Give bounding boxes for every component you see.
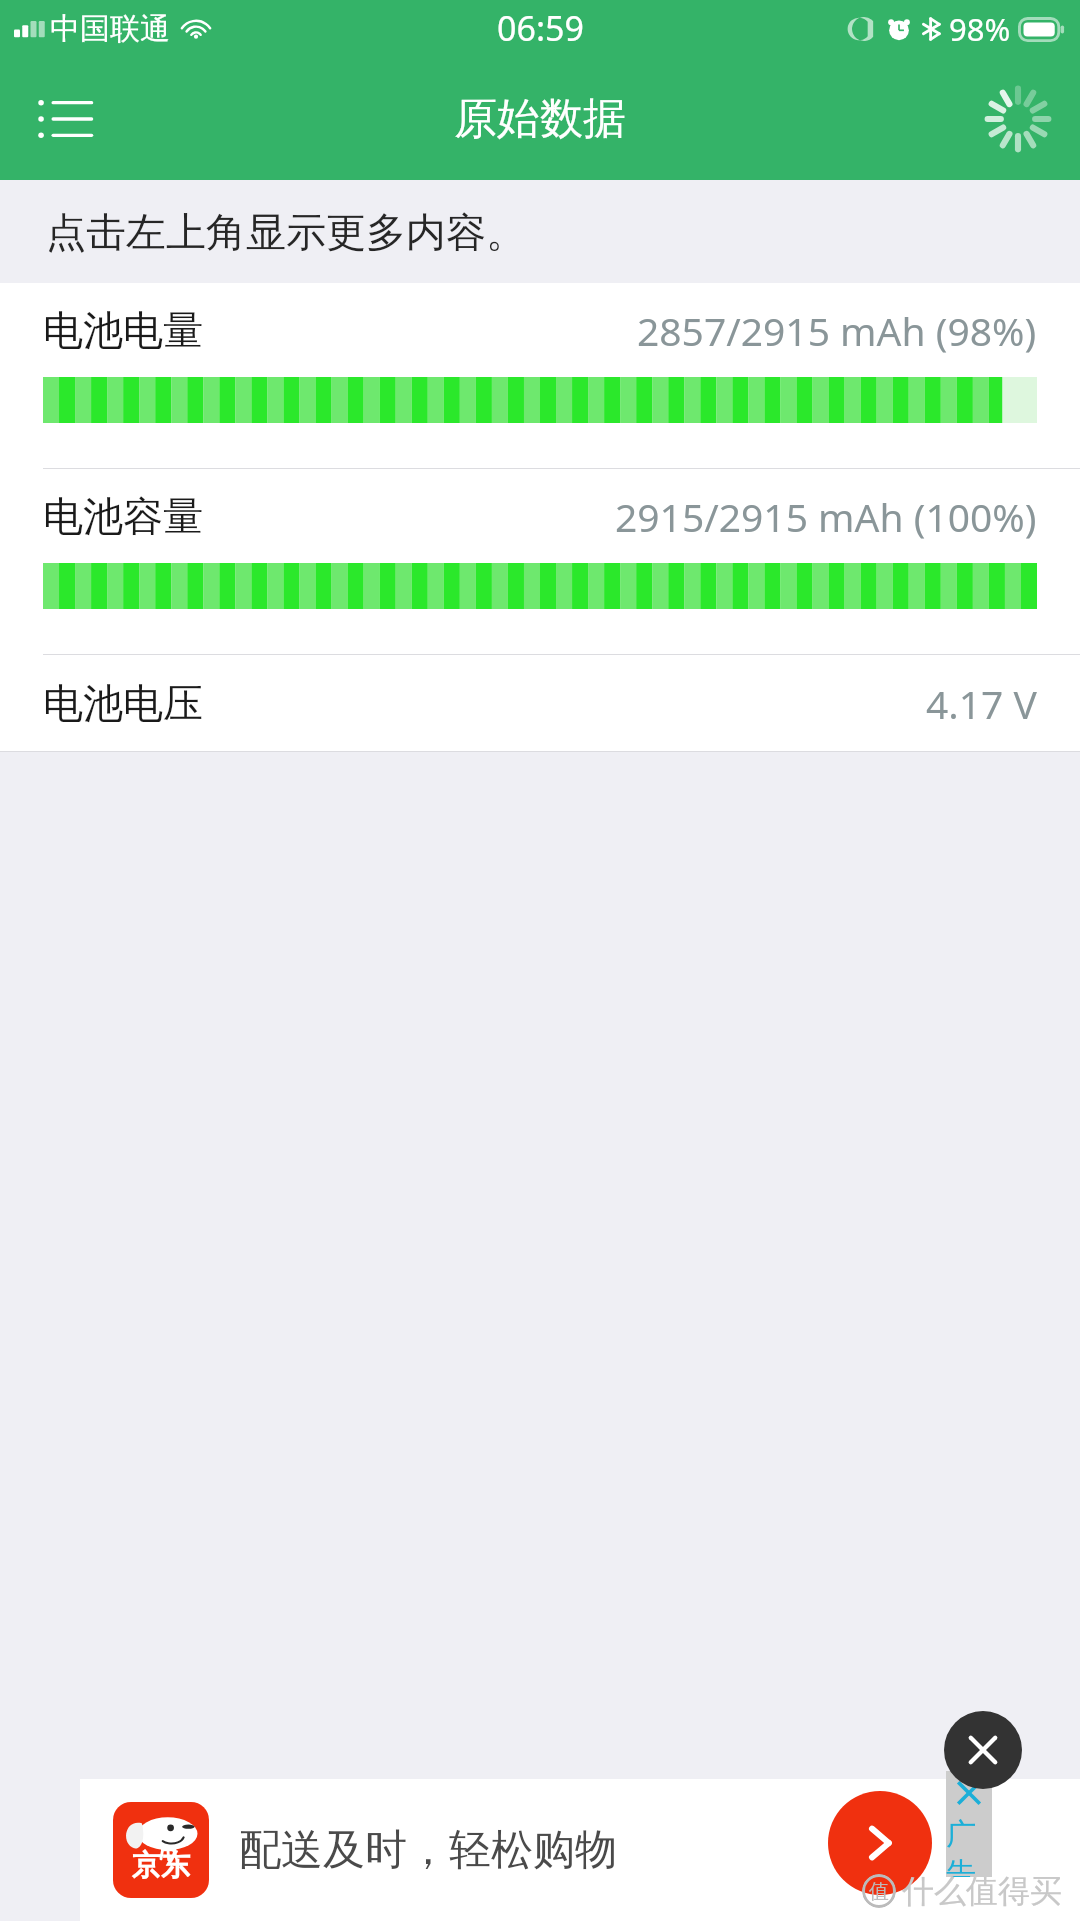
button[interactable]: Close — [944, 1711, 1022, 1789]
staticText: 电池电量 — [43, 305, 203, 355]
staticText: 原始数据 — [454, 92, 626, 146]
staticText: 电池容量 — [43, 491, 203, 541]
button[interactable]: Menu — [18, 71, 114, 167]
staticText: 什么值得买 — [902, 1871, 1062, 1911]
staticText: 值 — [869, 1879, 889, 1904]
staticText: 广告 — [946, 1815, 992, 1877]
staticText: 点击左上角显示更多内容。 — [46, 207, 526, 257]
staticText: 电池电压 — [43, 678, 203, 728]
button[interactable]: Open ad — [828, 1791, 932, 1895]
staticText: 2915/2915 mAh (100%) — [615, 490, 1037, 543]
staticText: 98% — [949, 8, 1011, 50]
staticText: 4.17 V — [926, 677, 1037, 730]
staticText: 2857/2915 mAh (98%) — [637, 304, 1037, 357]
button[interactable]: 京东 — [80, 1779, 1080, 1921]
staticText: 中国联通 — [50, 10, 170, 48]
staticText: 06:59 — [497, 5, 584, 51]
button[interactable]: Refresh — [970, 71, 1066, 167]
staticText: 配送及时，轻松购物 — [239, 1824, 617, 1877]
staticText: 京东 — [132, 1847, 190, 1884]
